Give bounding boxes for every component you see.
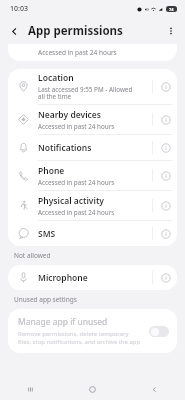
staticText: App permissions <box>28 23 123 39</box>
staticText: Unused app settings <box>14 295 77 304</box>
staticText: Microphone <box>38 272 88 284</box>
button[interactable]: Location info <box>155 76 177 98</box>
staticText: Location <box>38 72 74 84</box>
button[interactable]: Nearby devices <box>8 105 177 134</box>
button[interactable]: Manage app if unused <box>8 309 177 353</box>
button[interactable]: Microphone info <box>155 267 177 289</box>
staticText: Phone <box>38 165 65 177</box>
button[interactable]: Microphone <box>8 265 177 290</box>
button[interactable]: More options <box>162 22 180 40</box>
button[interactable]: SMS <box>8 221 177 246</box>
staticText: Not allowed <box>14 251 51 260</box>
staticText: SMS <box>38 228 56 240</box>
button[interactable]: Nearby devices info <box>155 109 177 131</box>
staticText: Manage app if unused <box>18 316 108 328</box>
staticText: Accessed in past 24 hours <box>38 122 115 131</box>
button[interactable]: Home <box>61 378 123 400</box>
button[interactable]: Notifications info <box>155 137 177 159</box>
staticText: 74 <box>169 7 174 12</box>
button[interactable]: Phone <box>8 161 177 190</box>
button[interactable]: Manage app if unused toggle <box>149 326 169 337</box>
button[interactable]: Recent apps <box>0 378 61 400</box>
staticText: Remove permissions, delete temporary fil… <box>18 330 141 346</box>
staticText: Physical activity <box>38 195 105 207</box>
staticText: Accessed in past 24 hours <box>38 178 115 187</box>
staticText: Last accessed 9:55 PM - Allowed all the … <box>38 85 133 101</box>
button[interactable]: SMS info <box>155 223 177 245</box>
staticText: Accessed in past 24 hours <box>38 48 117 57</box>
button[interactable]: Back <box>123 378 185 400</box>
staticText: Nearby devices <box>38 109 102 121</box>
button[interactable]: Notifications <box>8 135 177 160</box>
button[interactable]: Location <box>8 69 177 104</box>
staticText: 10:03 <box>10 4 28 14</box>
button[interactable]: Back <box>5 22 23 40</box>
button[interactable]: Phone info <box>155 165 177 187</box>
staticText: Notifications <box>38 142 92 154</box>
button[interactable]: Physical activity info <box>155 195 177 217</box>
staticText: Accessed in past 24 hours <box>38 208 115 217</box>
button[interactable]: Physical activity <box>8 191 177 220</box>
